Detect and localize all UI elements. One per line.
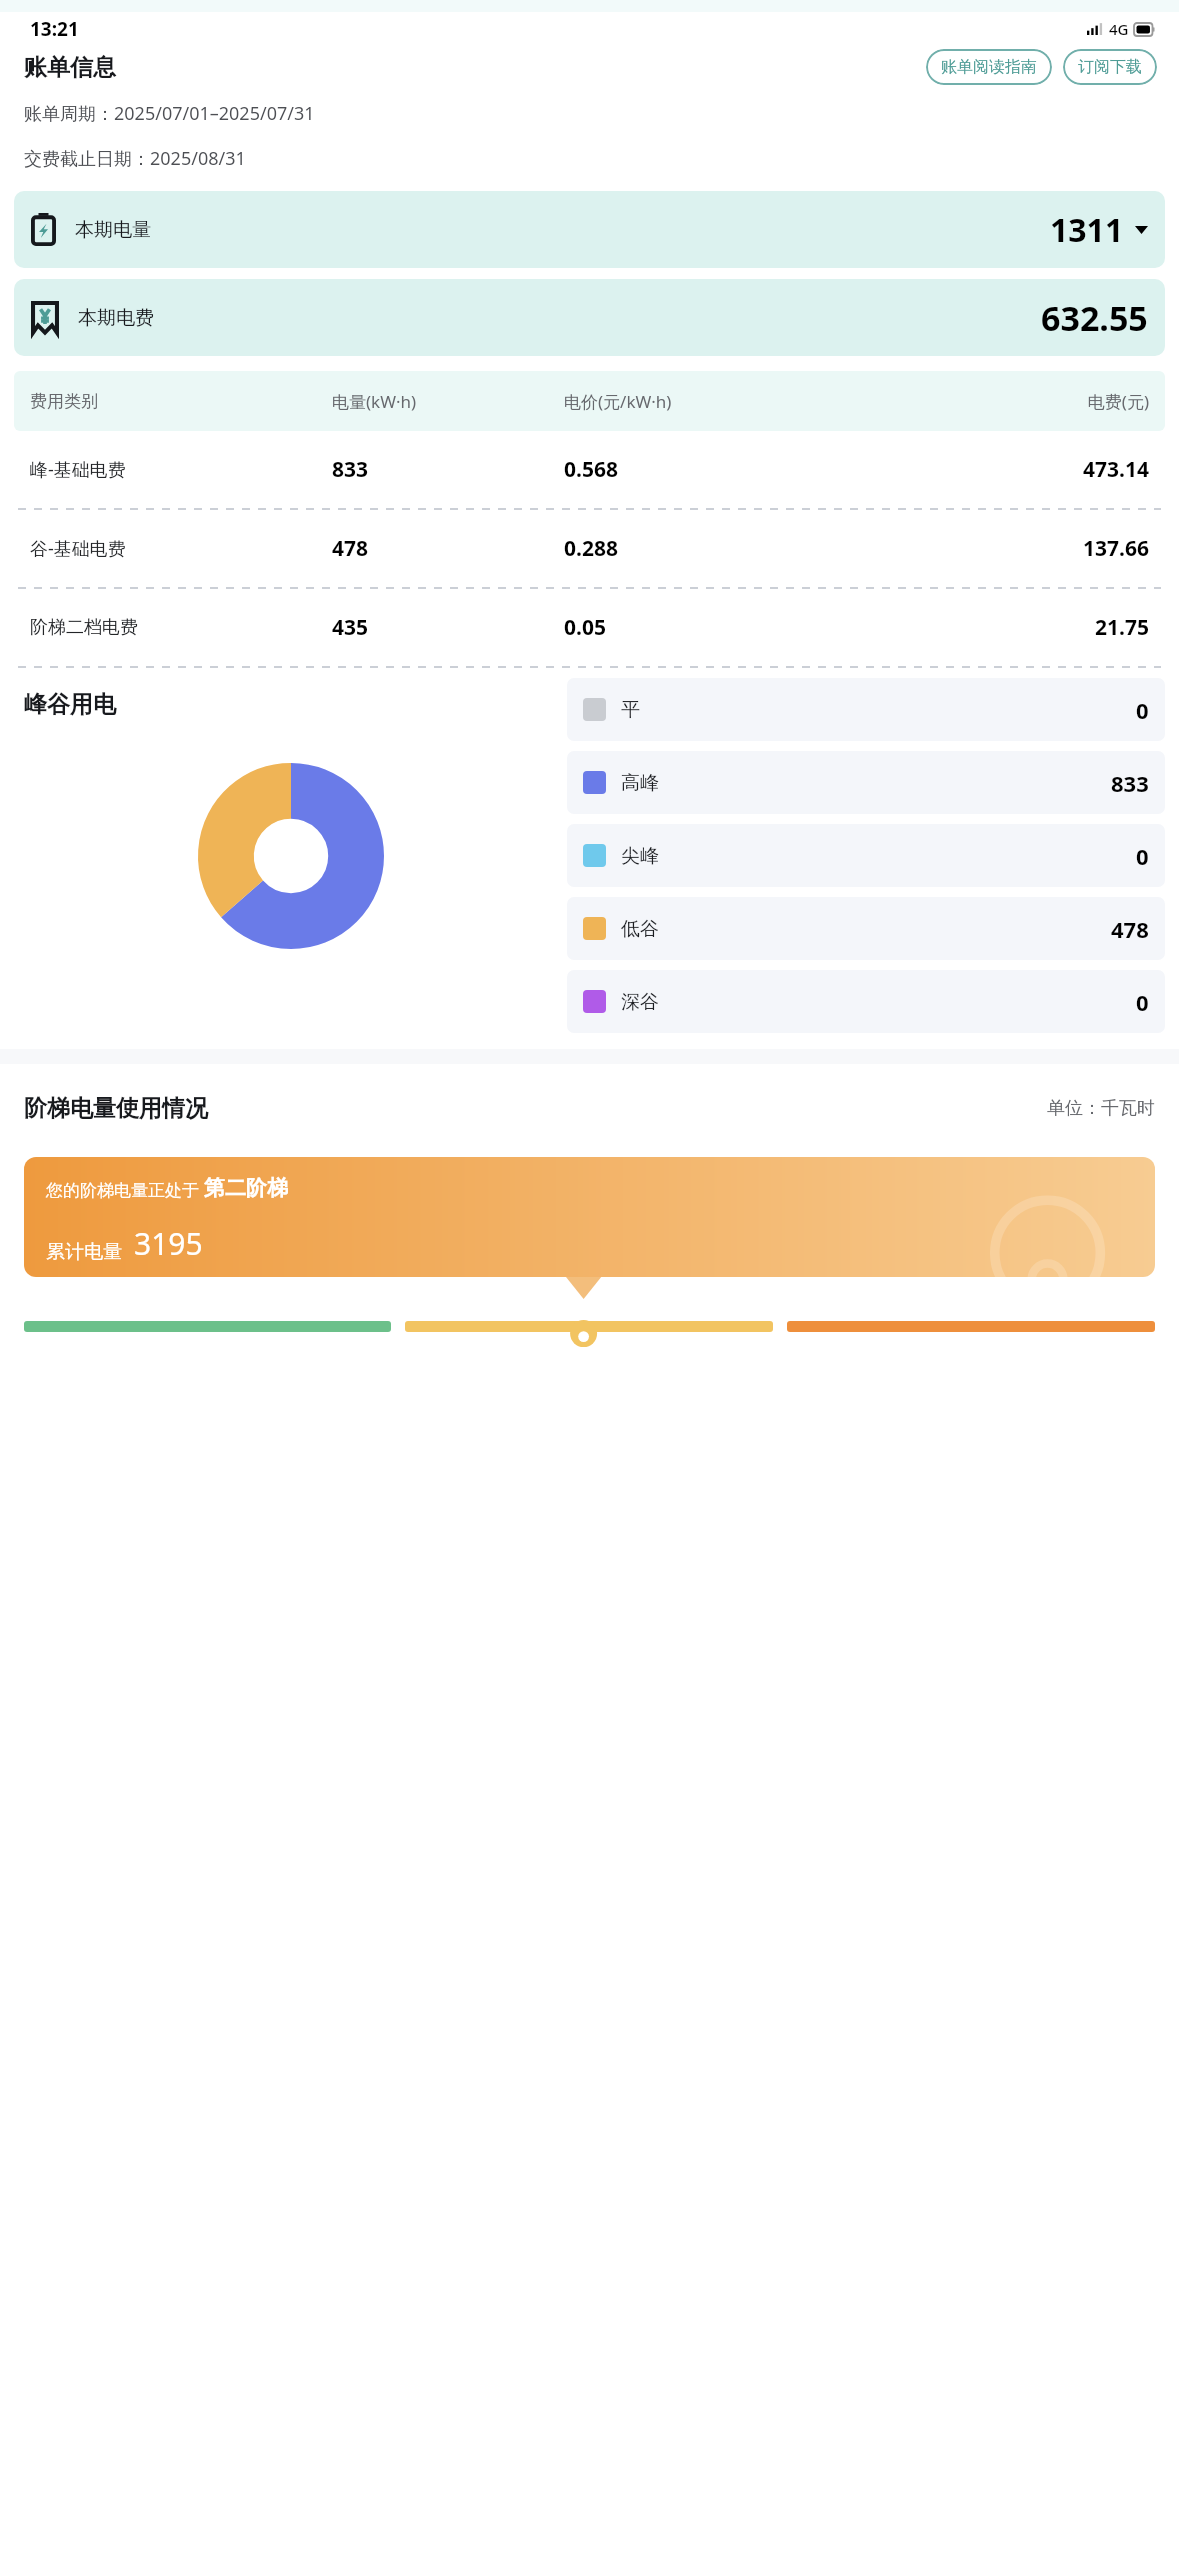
staticText: 电费(元) <box>894 390 1149 413</box>
staticText: 478 <box>332 534 564 563</box>
button[interactable]: 阶梯二档电费 <box>14 589 1165 666</box>
staticText: 阶梯电量使用情况 <box>24 1094 208 1123</box>
button[interactable]: 您的阶梯电量正处于 <box>24 1157 1155 1277</box>
staticText: 平 <box>621 698 640 722</box>
staticText: 高峰 <box>621 771 659 795</box>
staticText: 账单信息 <box>24 53 116 82</box>
staticText: 0 <box>1136 987 1149 1017</box>
staticText: 0 <box>1136 841 1149 871</box>
button[interactable]: Electricity fee <box>14 279 1165 356</box>
staticText: 交费截止日期：2025/08/31 <box>24 146 246 171</box>
staticText: 0.568 <box>564 455 894 484</box>
staticText: 833 <box>332 455 564 484</box>
staticText: 电价(元/kW·h) <box>564 390 894 413</box>
button[interactable]: 深谷 <box>567 970 1165 1033</box>
staticText: 订阅下载 <box>1078 57 1142 77</box>
staticText: 峰-基础电费 <box>30 457 332 482</box>
other: Peak valley donut chart <box>198 763 384 949</box>
staticText: 您的阶梯电量正处于 <box>46 1178 204 1201</box>
staticText: 435 <box>332 613 564 642</box>
staticText: 478 <box>1111 914 1149 944</box>
staticText: 低谷 <box>621 917 659 941</box>
staticText: 0 <box>1136 695 1149 725</box>
staticText: 本期电量 <box>75 218 151 242</box>
staticText: 阶梯二档电费 <box>30 616 332 639</box>
staticText: 累计电量 <box>46 1240 122 1264</box>
staticText: 账单周期：2025/07/01–2025/07/31 <box>24 101 315 126</box>
staticText: 第二阶梯 <box>204 1175 288 1201</box>
staticText: 账单阅读指南 <box>941 57 1037 77</box>
button[interactable]: 平 <box>567 678 1165 741</box>
staticText: 峰谷用电 <box>24 690 116 719</box>
button[interactable]: 低谷 <box>567 897 1165 960</box>
staticText: 473.14 <box>894 455 1149 484</box>
button[interactable]: 峰-基础电费 <box>14 431 1165 508</box>
staticText: 0.288 <box>564 534 894 563</box>
staticText: 0.05 <box>564 613 894 642</box>
button[interactable]: 账单阅读指南 <box>926 49 1052 85</box>
staticText: 21.75 <box>894 613 1149 642</box>
staticText: 单位：千瓦时 <box>1047 1097 1155 1120</box>
staticText: 137.66 <box>894 534 1149 563</box>
button[interactable]: 谷-基础电费 <box>14 510 1165 587</box>
staticText: 1311 <box>1050 208 1124 252</box>
staticText: 电量(kW·h) <box>332 390 564 413</box>
button[interactable]: Electricity usage <box>14 191 1165 268</box>
staticText: 尖峰 <box>621 844 659 868</box>
staticText: 深谷 <box>621 990 659 1014</box>
staticText: 3195 <box>134 1223 203 1264</box>
staticText: 4G <box>1109 19 1129 39</box>
staticText: 本期电费 <box>78 306 154 330</box>
button[interactable]: 尖峰 <box>567 824 1165 887</box>
other: Electricity usage <box>31 213 56 246</box>
staticText: 13:21 <box>30 16 79 42</box>
button[interactable]: 订阅下载 <box>1063 49 1157 85</box>
other: Electricity fee <box>31 301 59 334</box>
staticText: 谷-基础电费 <box>30 536 332 561</box>
staticText: 833 <box>1111 768 1149 798</box>
staticText: 费用类别 <box>30 391 332 412</box>
staticText: 632.55 <box>1041 295 1148 341</box>
button[interactable]: 高峰 <box>567 751 1165 814</box>
